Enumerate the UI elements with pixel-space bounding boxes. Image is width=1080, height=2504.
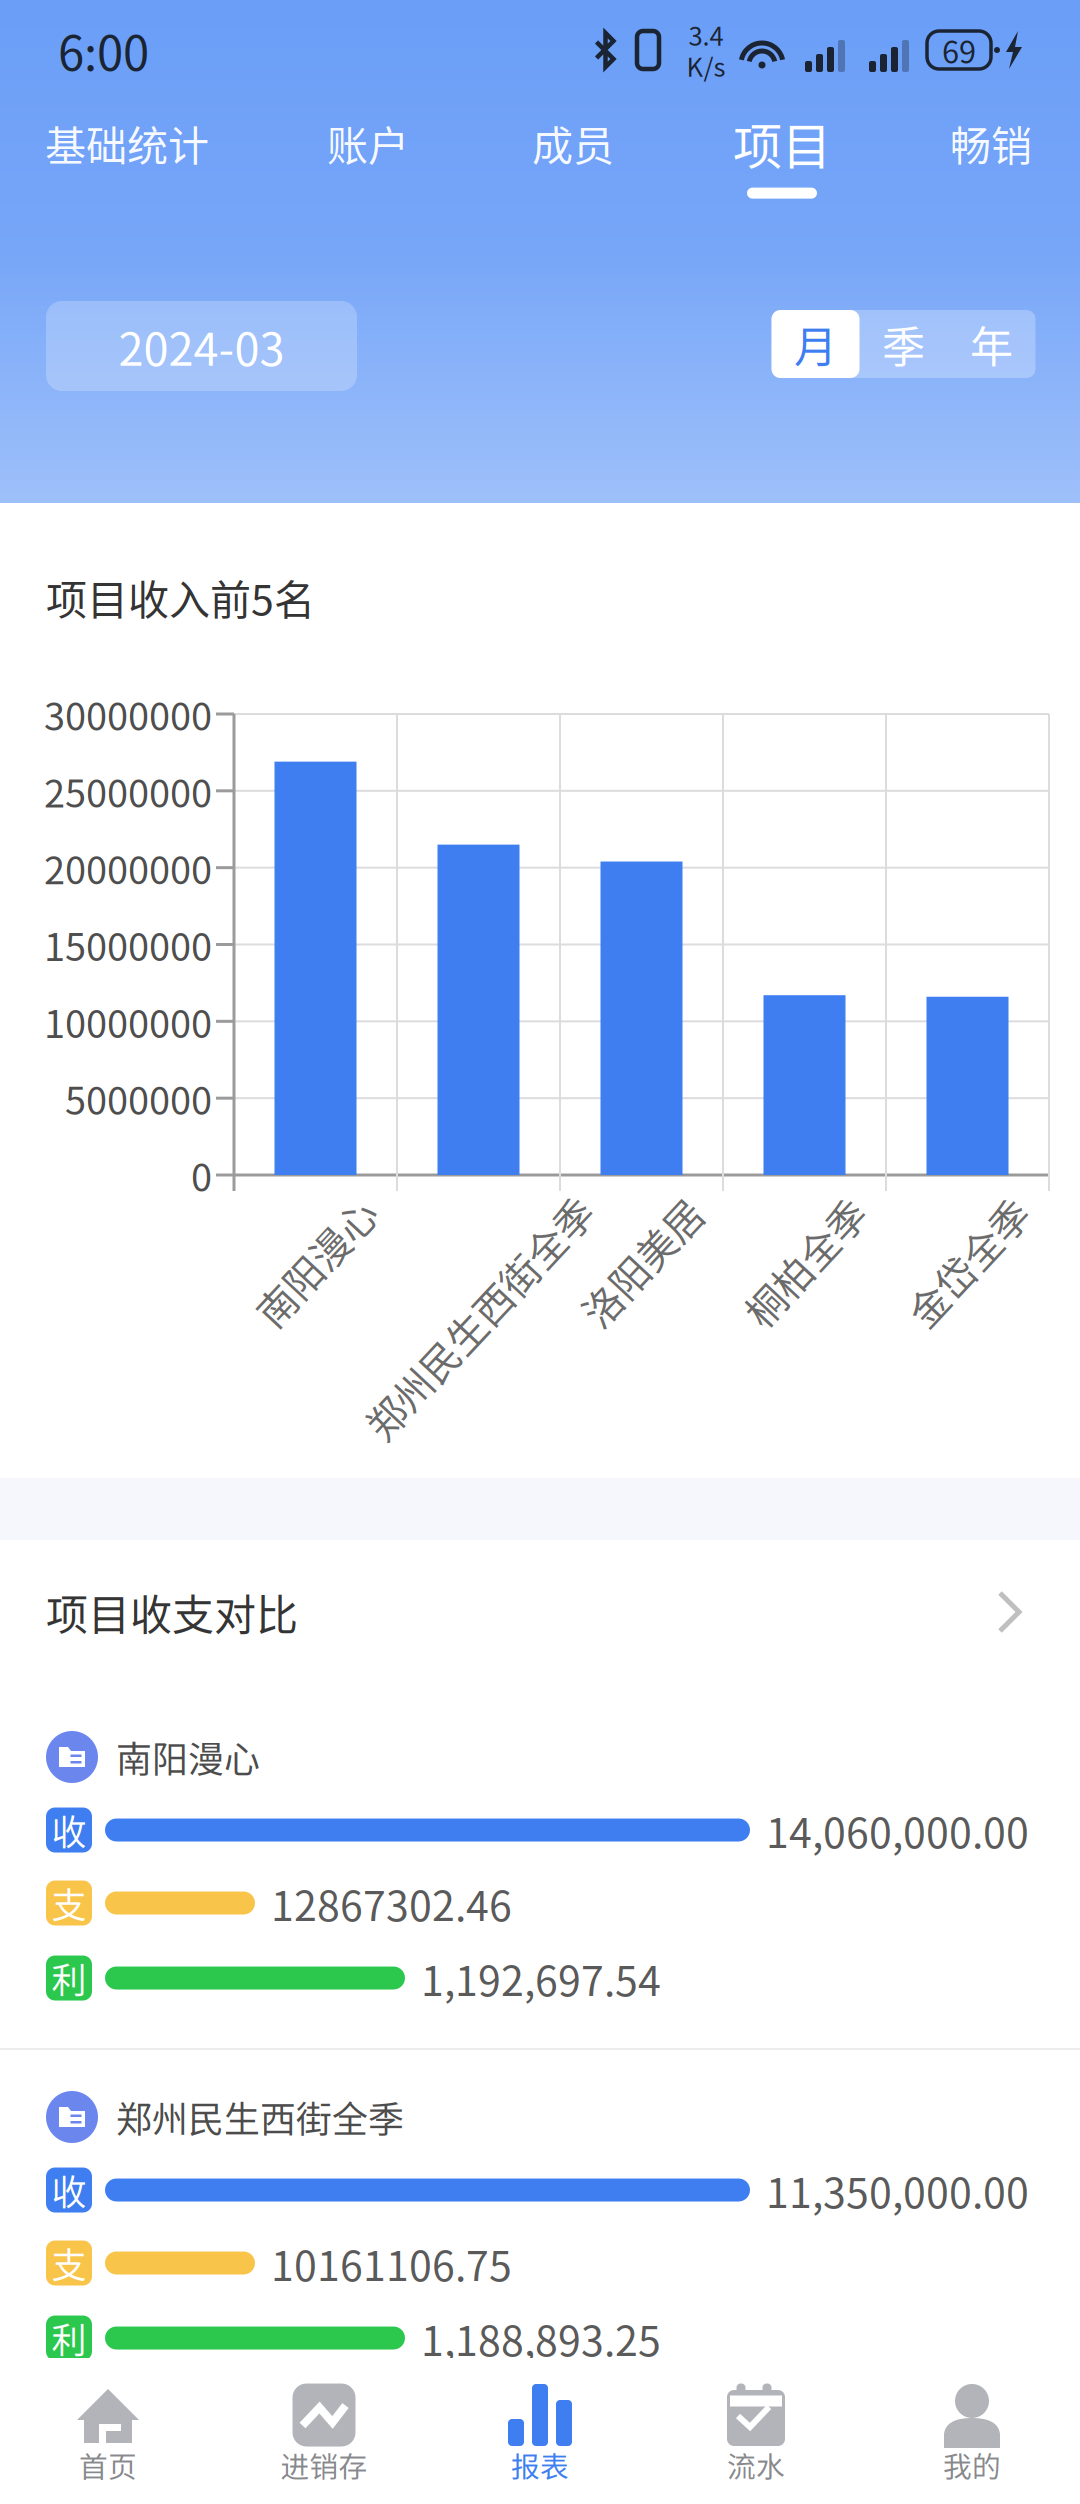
button[interactable]: 首页 xyxy=(0,2358,216,2504)
staticText: 郑州民生西街全季 xyxy=(116,2091,404,2143)
button[interactable]: 年 xyxy=(947,310,1035,378)
staticText: 进销存 xyxy=(280,2444,367,2486)
staticText: 15000000 xyxy=(44,917,212,972)
button[interactable]: 2024-03 xyxy=(46,301,357,391)
staticText: 20000000 xyxy=(44,840,212,895)
staticText: 年 xyxy=(970,313,1013,375)
staticText: 25000000 xyxy=(44,763,212,818)
button[interactable]: 进销存 xyxy=(216,2358,432,2504)
button[interactable]: 成员 xyxy=(453,100,693,206)
staticText: K/s xyxy=(686,47,725,84)
staticText: 1,188,893.25 xyxy=(421,2308,661,2368)
staticText: 6:00 xyxy=(58,16,149,84)
staticText: 12867302.46 xyxy=(271,1873,512,1933)
staticText: 利 xyxy=(51,1953,86,2003)
staticText: 报表 xyxy=(511,2444,569,2486)
staticText: 收 xyxy=(51,1805,86,1855)
staticText: 10000000 xyxy=(44,994,212,1049)
button[interactable]: 报表 xyxy=(432,2358,648,2504)
staticText: 项目收支对比 xyxy=(46,1582,298,1642)
staticText: 我的 xyxy=(943,2444,1001,2486)
staticText: 畅销 xyxy=(950,113,1032,173)
staticText: 洛阳美居 xyxy=(563,1233,719,1290)
staticText: 5000000 xyxy=(65,1071,212,1126)
staticText: 桐柏全季 xyxy=(726,1233,882,1290)
staticText: 支 xyxy=(51,2238,86,2288)
staticText: 季 xyxy=(882,313,925,375)
staticText: 郑州民生西街全季 xyxy=(322,1289,634,1345)
staticText: 流水 xyxy=(727,2444,785,2486)
staticText: 项目 xyxy=(733,107,831,179)
button[interactable]: 我的 xyxy=(864,2358,1080,2504)
staticText: 11,350,000.00 xyxy=(766,2160,1029,2220)
staticText: 月 xyxy=(794,313,837,375)
button[interactable]: 流水 xyxy=(648,2358,864,2504)
button[interactable]: 月 xyxy=(771,310,859,378)
staticText: 支 xyxy=(51,1878,86,1928)
button[interactable]: 账户 xyxy=(248,100,488,206)
button[interactable]: 畅销 xyxy=(871,100,1080,206)
button[interactable]: 基础统计 xyxy=(7,100,247,206)
button[interactable]: 项目收支对比 xyxy=(0,1540,1080,1690)
staticText: 首页 xyxy=(79,2444,137,2486)
staticText: 3.4 xyxy=(688,16,723,53)
staticText: 成员 xyxy=(532,113,614,173)
staticText: 69 xyxy=(942,28,976,72)
staticText: 金岱全季 xyxy=(889,1233,1045,1290)
staticText: 1,192,697.54 xyxy=(421,1948,661,2008)
staticText: 10161106.75 xyxy=(271,2233,512,2293)
staticText: 2024-03 xyxy=(118,313,284,379)
staticText: 基础统计 xyxy=(45,113,209,173)
staticText: 南阳漫心 xyxy=(237,1233,393,1290)
staticText: 收 xyxy=(51,2165,86,2215)
button[interactable]: 季 xyxy=(859,310,947,378)
button[interactable]: 项目 xyxy=(662,100,902,206)
staticText: 南阳漫心 xyxy=(116,1731,260,1783)
staticText: 利 xyxy=(51,2313,86,2363)
staticText: 30000000 xyxy=(44,686,212,741)
staticText: 账户 xyxy=(327,113,409,173)
staticText: 项目收入前5名 xyxy=(46,567,315,627)
staticText: 0 xyxy=(191,1147,212,1202)
staticText: 14,060,000.00 xyxy=(766,1800,1029,1860)
